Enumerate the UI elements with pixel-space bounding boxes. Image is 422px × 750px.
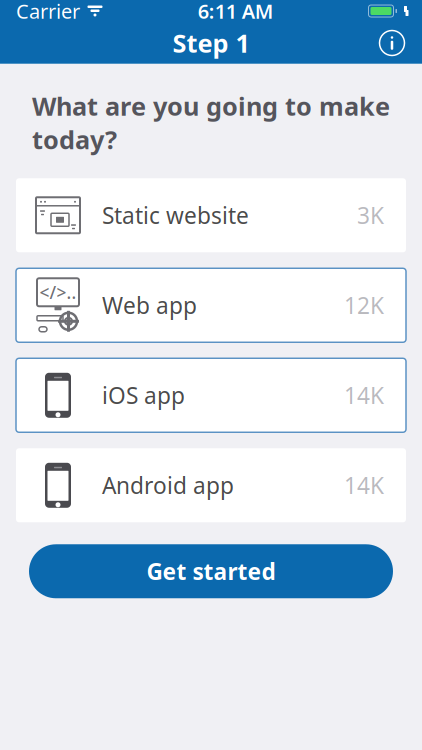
button[interactable]: Android app bbox=[16, 448, 406, 522]
staticText: Static website bbox=[102, 200, 249, 230]
staticText: iOS app bbox=[102, 380, 185, 410]
staticText: What are you going to make today? bbox=[32, 89, 390, 156]
button[interactable]: </>.. bbox=[16, 268, 406, 342]
button[interactable]: Static website bbox=[16, 178, 406, 252]
button[interactable]: iOS app bbox=[16, 358, 406, 432]
staticText: Android app bbox=[102, 470, 234, 500]
staticText: Get started bbox=[146, 556, 275, 586]
staticText: Carrier bbox=[16, 0, 80, 24]
staticText: Web app bbox=[102, 290, 197, 320]
button[interactable]: Information bbox=[370, 22, 414, 64]
staticText: </>.. bbox=[39, 281, 76, 304]
staticText: 3K bbox=[357, 200, 384, 230]
staticText: 6:11 AM bbox=[198, 0, 274, 24]
staticText: 14K bbox=[344, 380, 384, 410]
staticText: Step 1 bbox=[172, 26, 249, 60]
staticText: 14K bbox=[344, 470, 384, 500]
button[interactable]: Get started bbox=[29, 544, 393, 598]
staticText: 12K bbox=[344, 290, 384, 320]
